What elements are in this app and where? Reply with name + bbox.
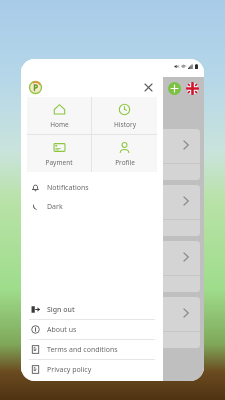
button[interactable]: Notifications	[21, 178, 163, 197]
button[interactable]: Dark	[21, 197, 163, 216]
staticText: 483.96 NOK	[49, 166, 92, 176]
staticText: cost	[31, 335, 43, 343]
button[interactable]: App logo	[29, 81, 42, 94]
button[interactable]: Add	[168, 82, 181, 95]
button[interactable]: cost	[25, 129, 200, 180]
staticText: Dark	[47, 202, 63, 212]
staticText: 52.64 NOK	[49, 334, 88, 344]
button[interactable]: Privacy policy	[21, 360, 163, 379]
staticText: About us	[47, 325, 77, 335]
button[interactable]: About us	[21, 320, 163, 339]
staticText: Privacy policy	[47, 365, 92, 375]
staticText: cost	[31, 167, 43, 175]
button[interactable]: Payment	[27, 135, 91, 172]
staticText: Profile	[115, 158, 135, 167]
button[interactable]: Close menu	[141, 80, 155, 94]
staticText: Payment	[45, 158, 73, 167]
button[interactable]: Terms and conditions	[21, 340, 163, 359]
staticText: Home	[50, 120, 69, 129]
button[interactable]: Language	[186, 82, 199, 95]
button[interactable]: Home	[27, 97, 91, 134]
staticText: Notifications	[47, 183, 89, 193]
button[interactable]: Sign out	[21, 300, 163, 319]
button[interactable]: cost	[25, 297, 200, 348]
button[interactable]: Profile	[92, 135, 157, 172]
staticText: History	[114, 120, 136, 129]
button[interactable]: cost	[25, 185, 200, 236]
staticText: Sign out	[47, 305, 75, 315]
button[interactable]: cost	[25, 241, 200, 292]
button[interactable]: History	[92, 97, 157, 134]
staticText: Terms and conditions	[47, 345, 118, 355]
